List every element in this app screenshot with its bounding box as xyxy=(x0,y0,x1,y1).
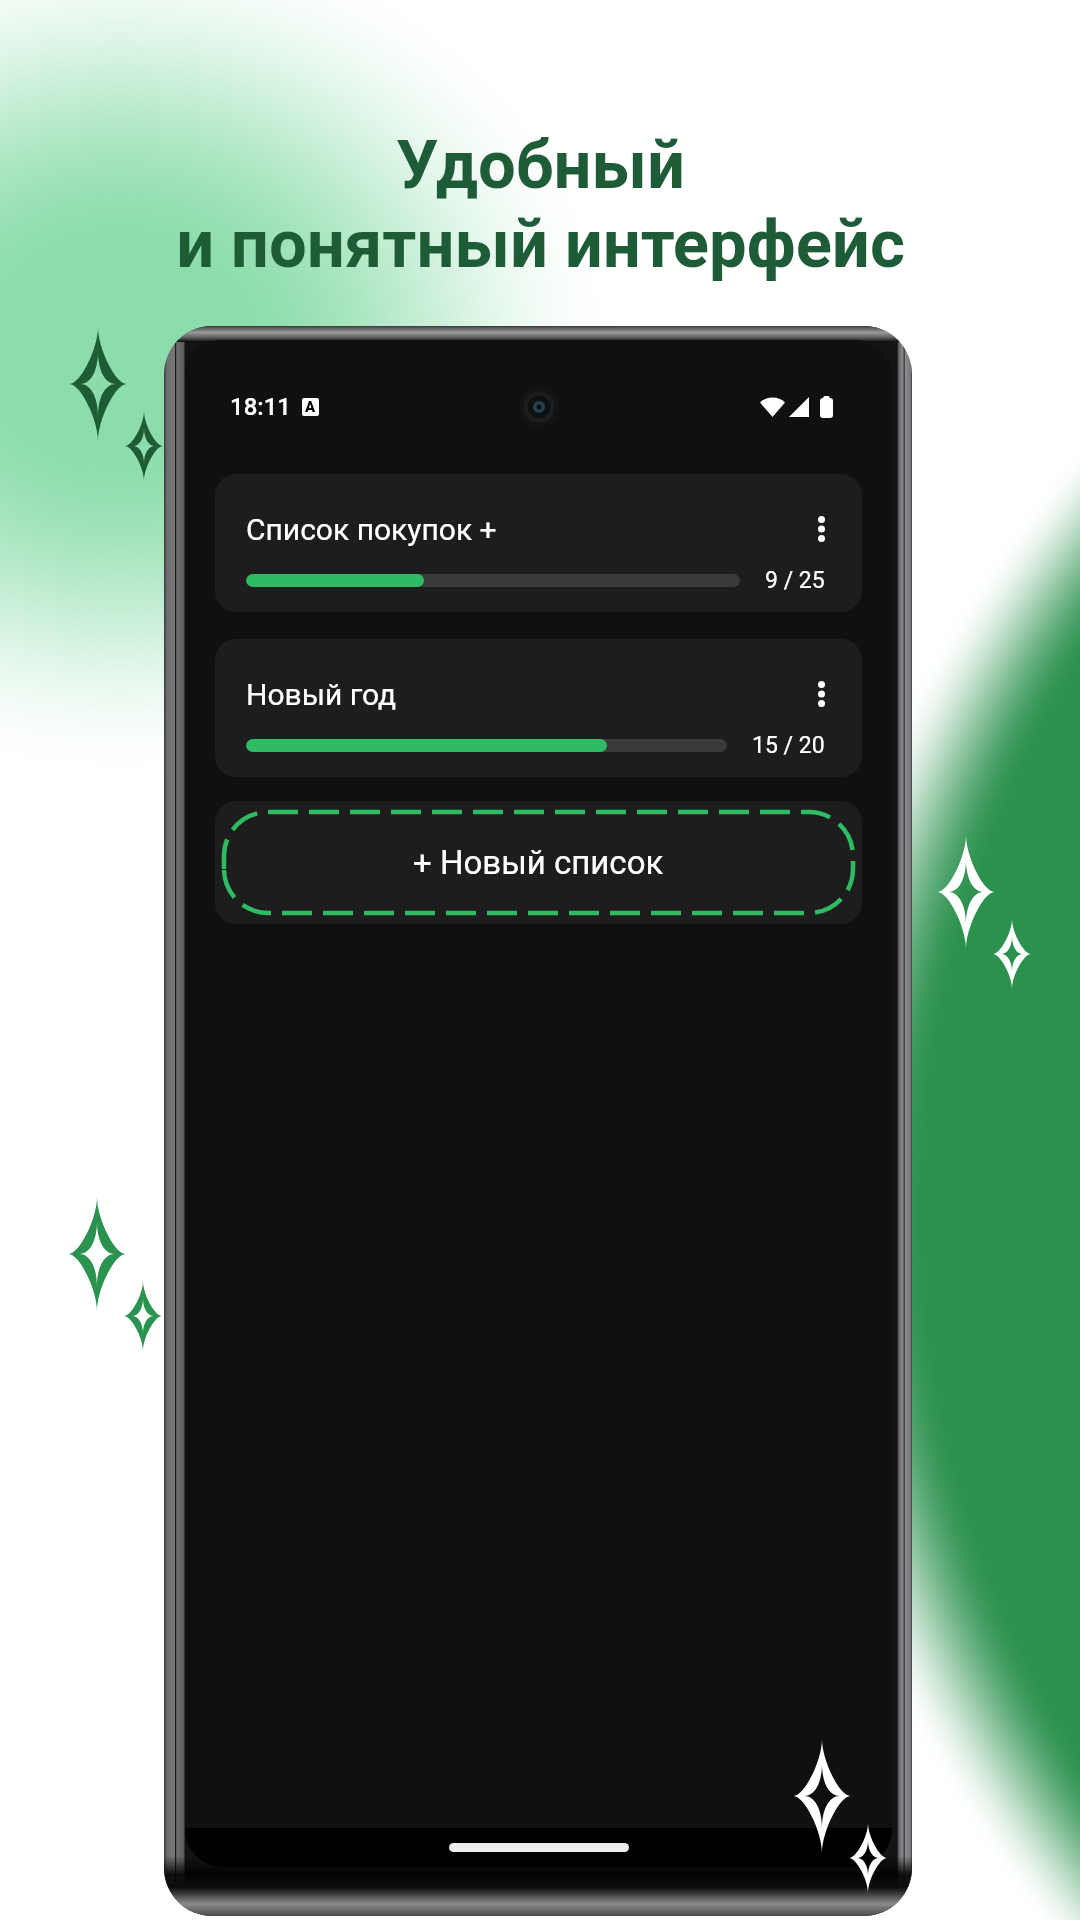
staticText: 18:11 xyxy=(230,393,291,421)
staticText: 15 / 20 xyxy=(752,732,825,759)
staticText: Список покупок + xyxy=(246,512,803,547)
button[interactable]: Новый год xyxy=(215,639,862,777)
staticText: 9 / 25 xyxy=(765,567,825,594)
button[interactable]: More options xyxy=(803,676,839,712)
button[interactable]: + Новый список xyxy=(215,801,862,924)
staticText: + Новый список xyxy=(413,843,664,882)
staticText: A xyxy=(305,398,316,416)
staticText: и понятный интерфейс xyxy=(176,205,905,284)
staticText: Новый год xyxy=(246,677,803,712)
button[interactable]: Список покупок + xyxy=(215,474,862,612)
button[interactable]: More options xyxy=(803,511,839,547)
staticText: Удобный xyxy=(396,126,685,205)
